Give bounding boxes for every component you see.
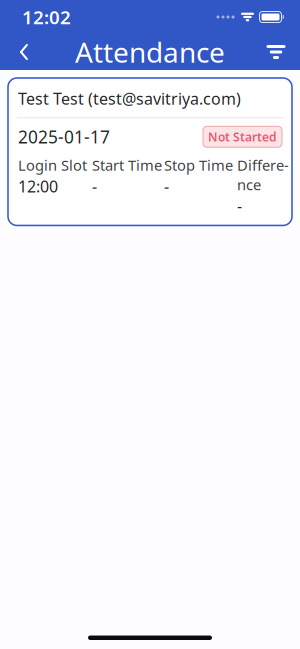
staticText: - <box>164 176 169 197</box>
staticText: Test Test (test@savitriya.com) <box>18 88 241 109</box>
staticText: - <box>92 176 97 197</box>
staticText: Login Slot <box>18 155 87 175</box>
staticText: 2025-01-17 <box>18 125 110 148</box>
button[interactable]: Filter <box>254 34 298 70</box>
button[interactable]: Back <box>2 34 46 70</box>
staticText: 12:02 <box>22 5 71 29</box>
staticText: - <box>237 195 242 216</box>
staticText: Not Started <box>208 129 277 145</box>
staticText: Attendance <box>75 33 225 71</box>
staticText: 12:00 <box>18 176 58 197</box>
staticText: Difference <box>237 155 289 194</box>
staticText: Start Time <box>92 155 162 175</box>
staticText: Stop Time <box>164 155 233 175</box>
